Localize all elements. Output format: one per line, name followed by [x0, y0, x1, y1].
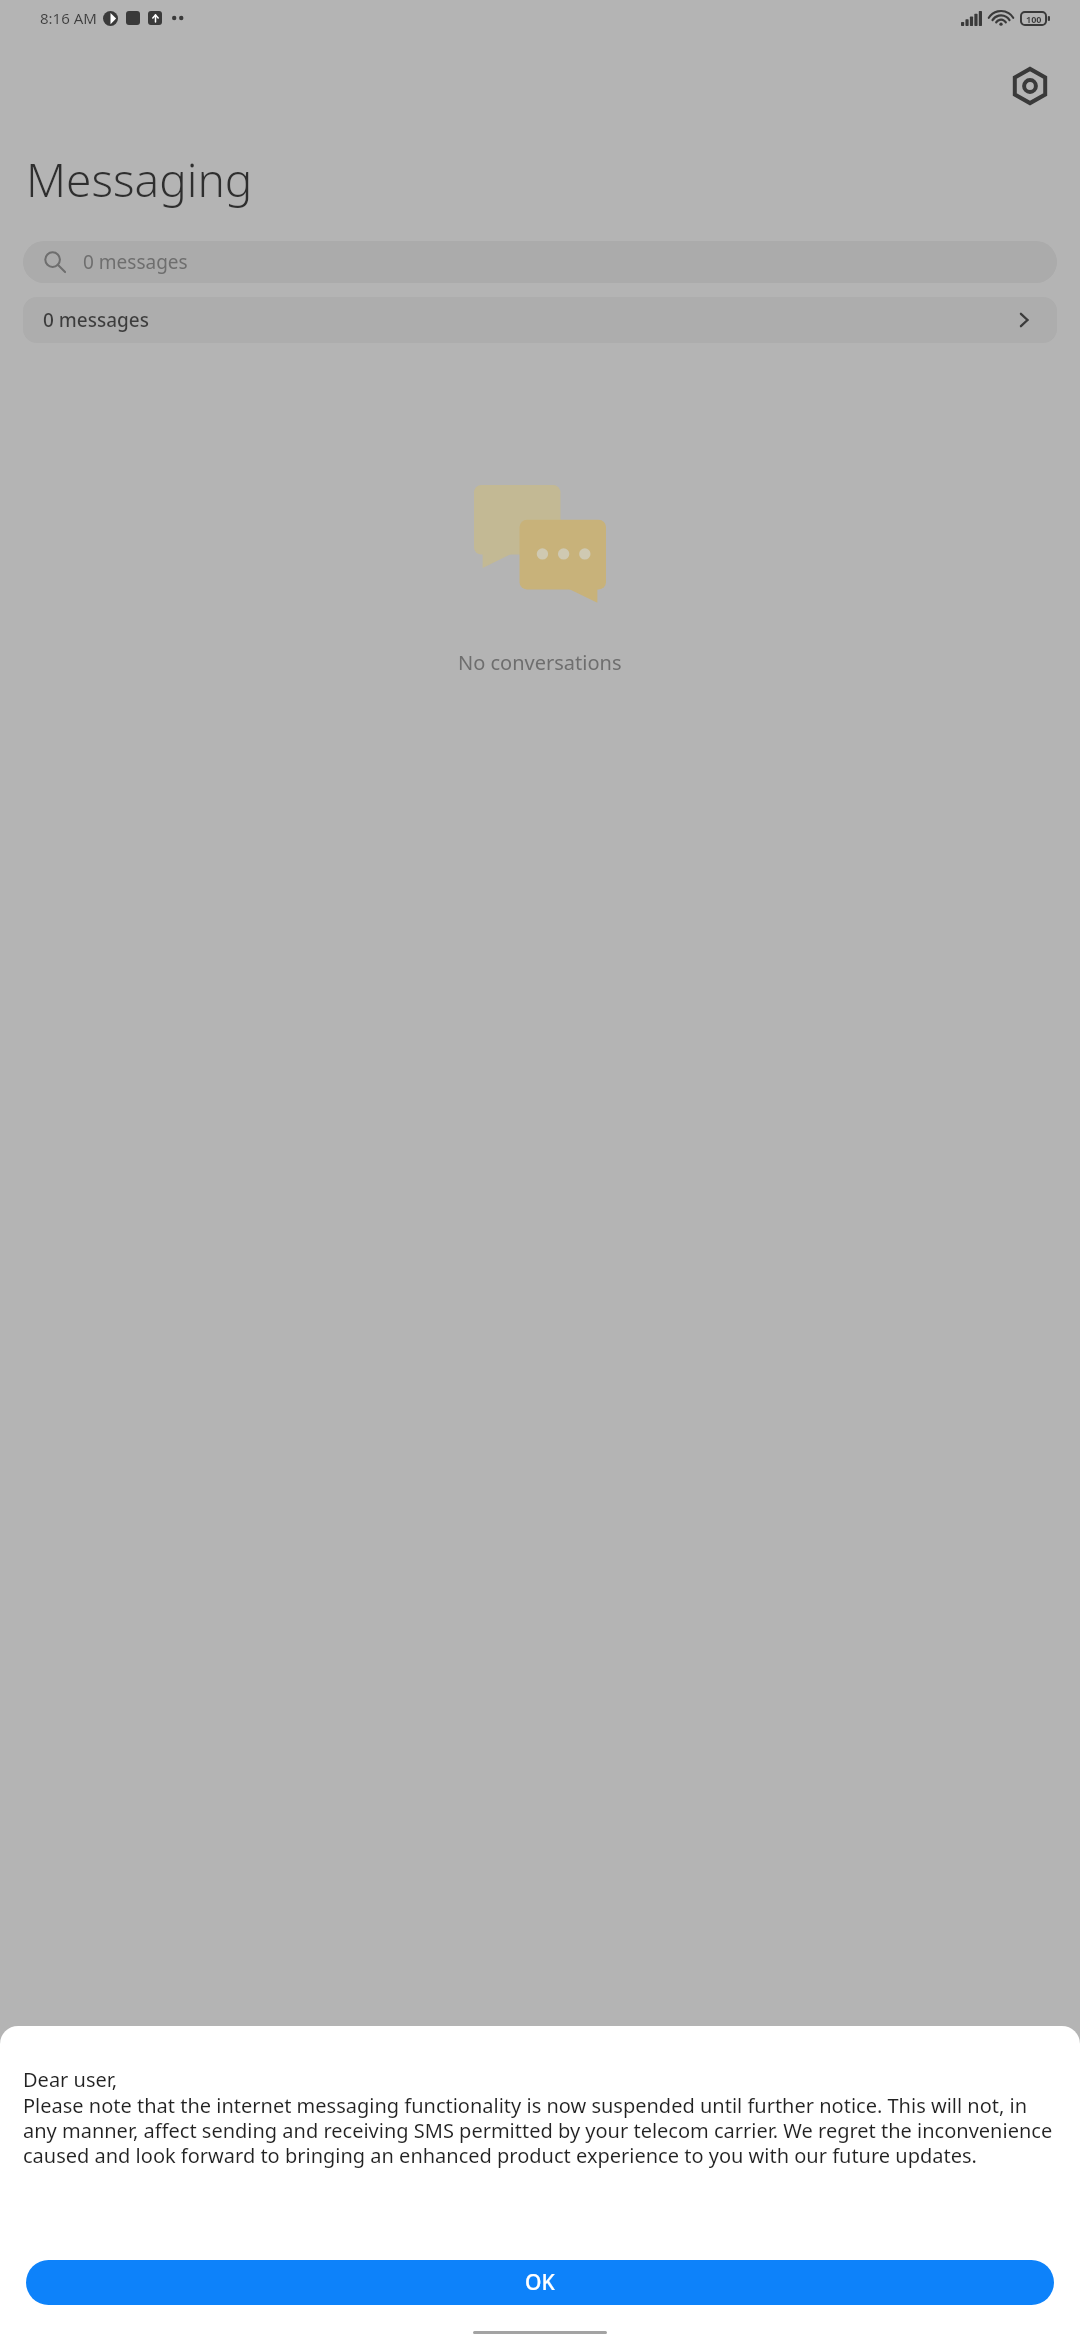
staticText: Dear user, Please note that the internet…: [23, 2066, 1060, 2168]
staticText: 0 messages: [43, 307, 149, 333]
button[interactable]: 0 messages: [23, 297, 1057, 343]
button[interactable]: OK: [26, 2260, 1054, 2305]
staticText: 100: [1026, 13, 1042, 25]
button[interactable]: 0 messages: [23, 241, 1057, 283]
staticText: OK: [525, 2268, 555, 2297]
staticText: Messaging: [26, 148, 253, 211]
staticText: 0 messages: [83, 249, 188, 275]
staticText: 8:16 AM: [40, 8, 97, 28]
button[interactable]: Settings: [1002, 58, 1058, 114]
staticText: No conversations: [458, 649, 622, 676]
